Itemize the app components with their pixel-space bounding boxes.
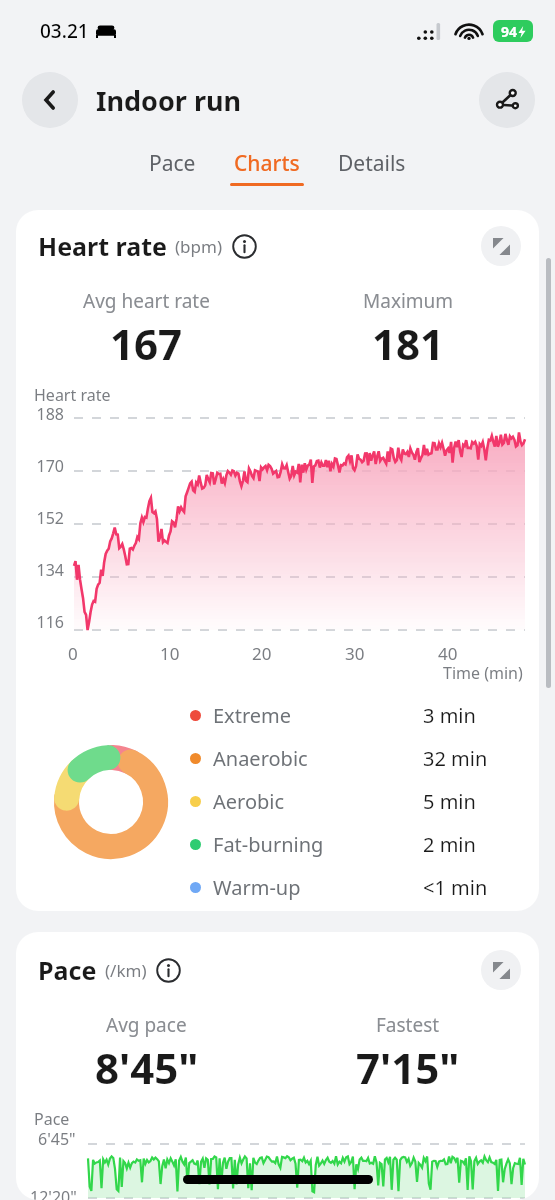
button[interactable]: Share	[479, 72, 535, 128]
staticText: 0	[68, 642, 78, 665]
button[interactable]: Aerobic	[190, 780, 515, 823]
staticText: 30	[345, 642, 365, 665]
button[interactable]: Expand	[481, 950, 521, 990]
staticText: Pace	[38, 953, 97, 987]
staticText: Warm-up	[213, 874, 301, 901]
button[interactable]: Charts	[226, 145, 308, 190]
staticText: 10	[160, 642, 180, 665]
staticText: 6'45"	[38, 1128, 76, 1150]
staticText: 2 min	[423, 831, 515, 858]
staticText: Details	[338, 149, 406, 178]
button[interactable]: Expand	[481, 226, 521, 266]
staticText: Fat-burning	[213, 831, 324, 858]
staticText: Extreme	[213, 702, 292, 729]
button[interactable]: Details	[334, 145, 410, 190]
staticText: (/km)	[105, 959, 147, 982]
staticText: 181	[372, 315, 445, 372]
staticText: 188	[16, 403, 64, 425]
button[interactable]: Warm-up	[190, 866, 515, 909]
staticText: 167	[110, 315, 183, 372]
staticText: 3 min	[423, 702, 515, 729]
staticText: 8'45"	[95, 1039, 199, 1096]
button[interactable]: Info	[156, 958, 181, 983]
button[interactable]: Extreme	[190, 694, 515, 737]
staticText: 12'20"	[30, 1186, 77, 1200]
staticText: Pace	[149, 149, 196, 178]
staticText: 152	[16, 507, 64, 529]
staticText: Indoor run	[96, 82, 242, 119]
staticText: Avg pace	[106, 1012, 187, 1038]
staticText: 40	[438, 642, 458, 665]
staticText: 03.21	[40, 18, 89, 44]
staticText: 116	[16, 611, 64, 633]
button[interactable]: Info	[232, 234, 257, 259]
staticText: Heart rate	[38, 229, 167, 263]
staticText: Avg heart rate	[83, 288, 210, 314]
button[interactable]: Pace	[16, 932, 539, 1200]
staticText: Anaerobic	[213, 745, 308, 772]
staticText: Maximum	[363, 288, 454, 314]
button[interactable]: Anaerobic	[190, 737, 515, 780]
staticText: 32 min	[423, 745, 515, 772]
staticText: Charts	[234, 149, 300, 178]
staticText: Aerobic	[213, 788, 285, 815]
button[interactable]: Back	[22, 72, 78, 128]
staticText: 7'15"	[356, 1039, 460, 1096]
staticText: Pace	[34, 1108, 70, 1130]
staticText: Heart rate	[34, 384, 111, 406]
staticText: <1 min	[423, 874, 515, 901]
staticText: Time (min)	[443, 662, 523, 684]
staticText: 170	[16, 455, 64, 477]
staticText: 20	[252, 642, 272, 665]
staticText: (bpm)	[175, 235, 223, 258]
button[interactable]: Heart rate	[16, 210, 539, 911]
staticText: 134	[16, 559, 64, 581]
button[interactable]: Fat-burning	[190, 823, 515, 866]
staticText: Fastest	[376, 1012, 440, 1038]
staticText: 94	[501, 22, 518, 41]
button[interactable]: Pace	[145, 145, 200, 190]
staticText: 5 min	[423, 788, 515, 815]
